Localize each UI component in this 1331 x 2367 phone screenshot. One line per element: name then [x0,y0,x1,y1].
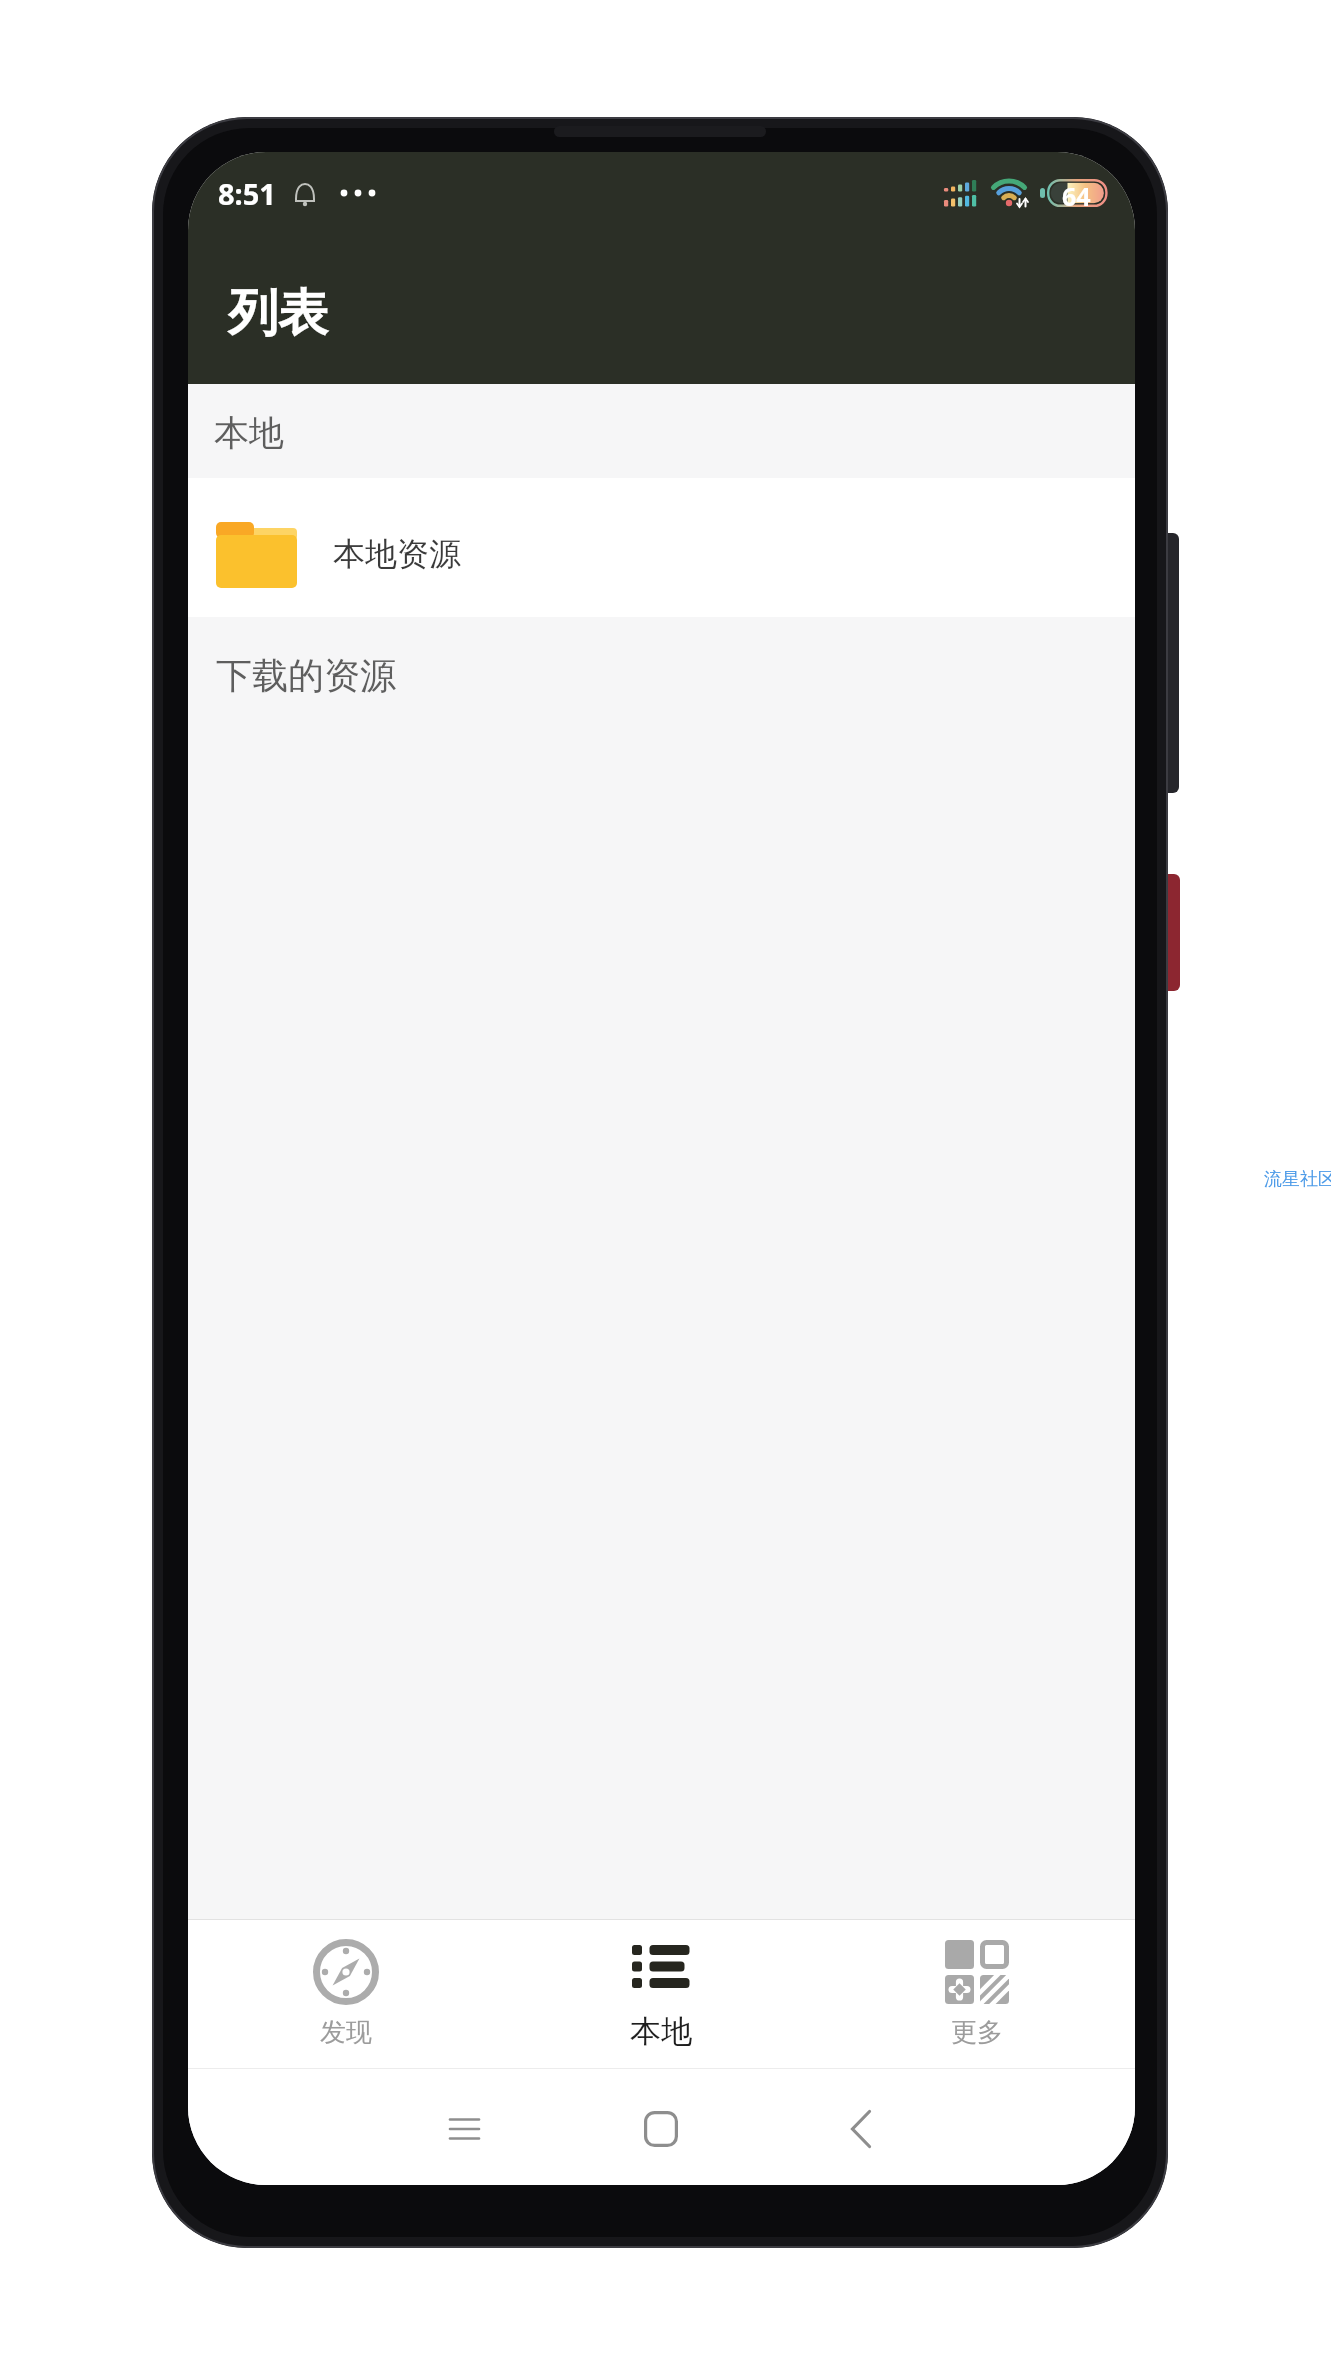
staticText: 流星社区 [1264,1168,1331,1191]
button[interactable]: 更多 [819,1920,1135,2068]
button[interactable] [436,2104,492,2154]
staticText: 发现 [320,2016,372,2049]
staticText: 本地资源 [333,534,461,574]
staticText: 列表 [228,282,328,345]
staticText: 更多 [951,2016,1003,2049]
button[interactable]: 本地资源 [188,478,1135,617]
button[interactable]: 发现 [188,1920,503,2068]
staticText: 下载的资源 [216,653,396,698]
staticText: 8:51 [218,174,276,213]
button[interactable] [833,2101,889,2157]
staticText: 64 [1062,179,1091,207]
staticText: 本地 [214,411,284,455]
button[interactable] [633,2101,689,2157]
staticText: 本地 [630,2012,692,2051]
button[interactable]: 本地 [503,1920,819,2068]
